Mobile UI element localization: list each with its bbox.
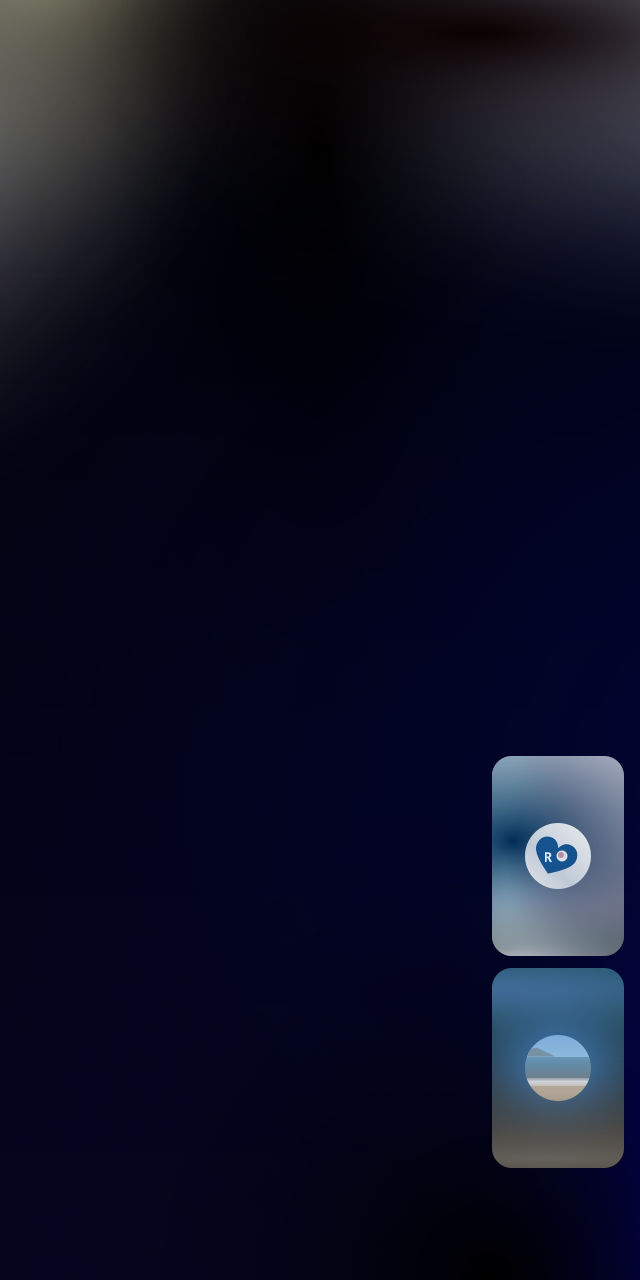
staticText: R [543,848,552,866]
button[interactable]: Shared album cover [492,756,624,956]
button[interactable]: Beach photo [492,968,624,1168]
